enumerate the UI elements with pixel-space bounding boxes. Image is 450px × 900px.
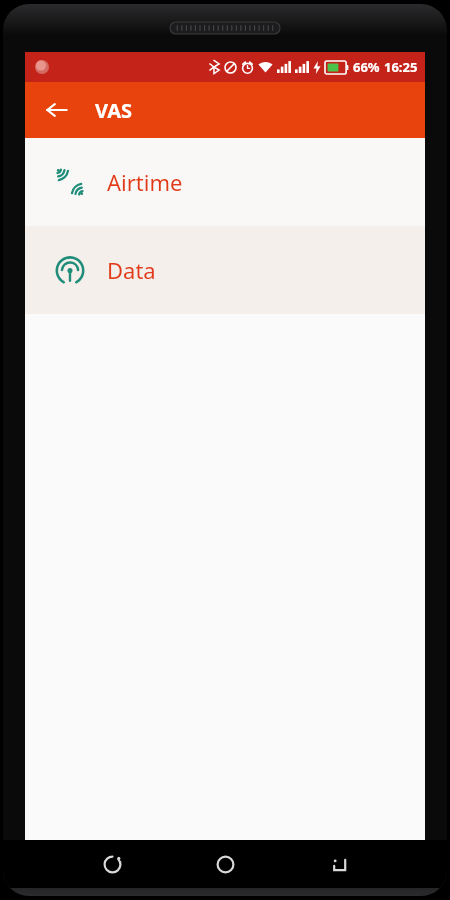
button[interactable]: Navigate up (37, 90, 77, 130)
button[interactable]: Home (198, 840, 252, 888)
staticText: VAS (95, 97, 133, 124)
button[interactable]: Airtime (25, 138, 425, 226)
staticText: Data (107, 255, 156, 285)
staticText: 16:25 (384, 58, 418, 76)
staticText: Airtime (107, 167, 183, 197)
button[interactable]: Data (25, 226, 425, 314)
button[interactable]: Back (312, 840, 366, 888)
button[interactable]: Recent apps (85, 840, 139, 888)
staticText: 66% (353, 58, 380, 76)
